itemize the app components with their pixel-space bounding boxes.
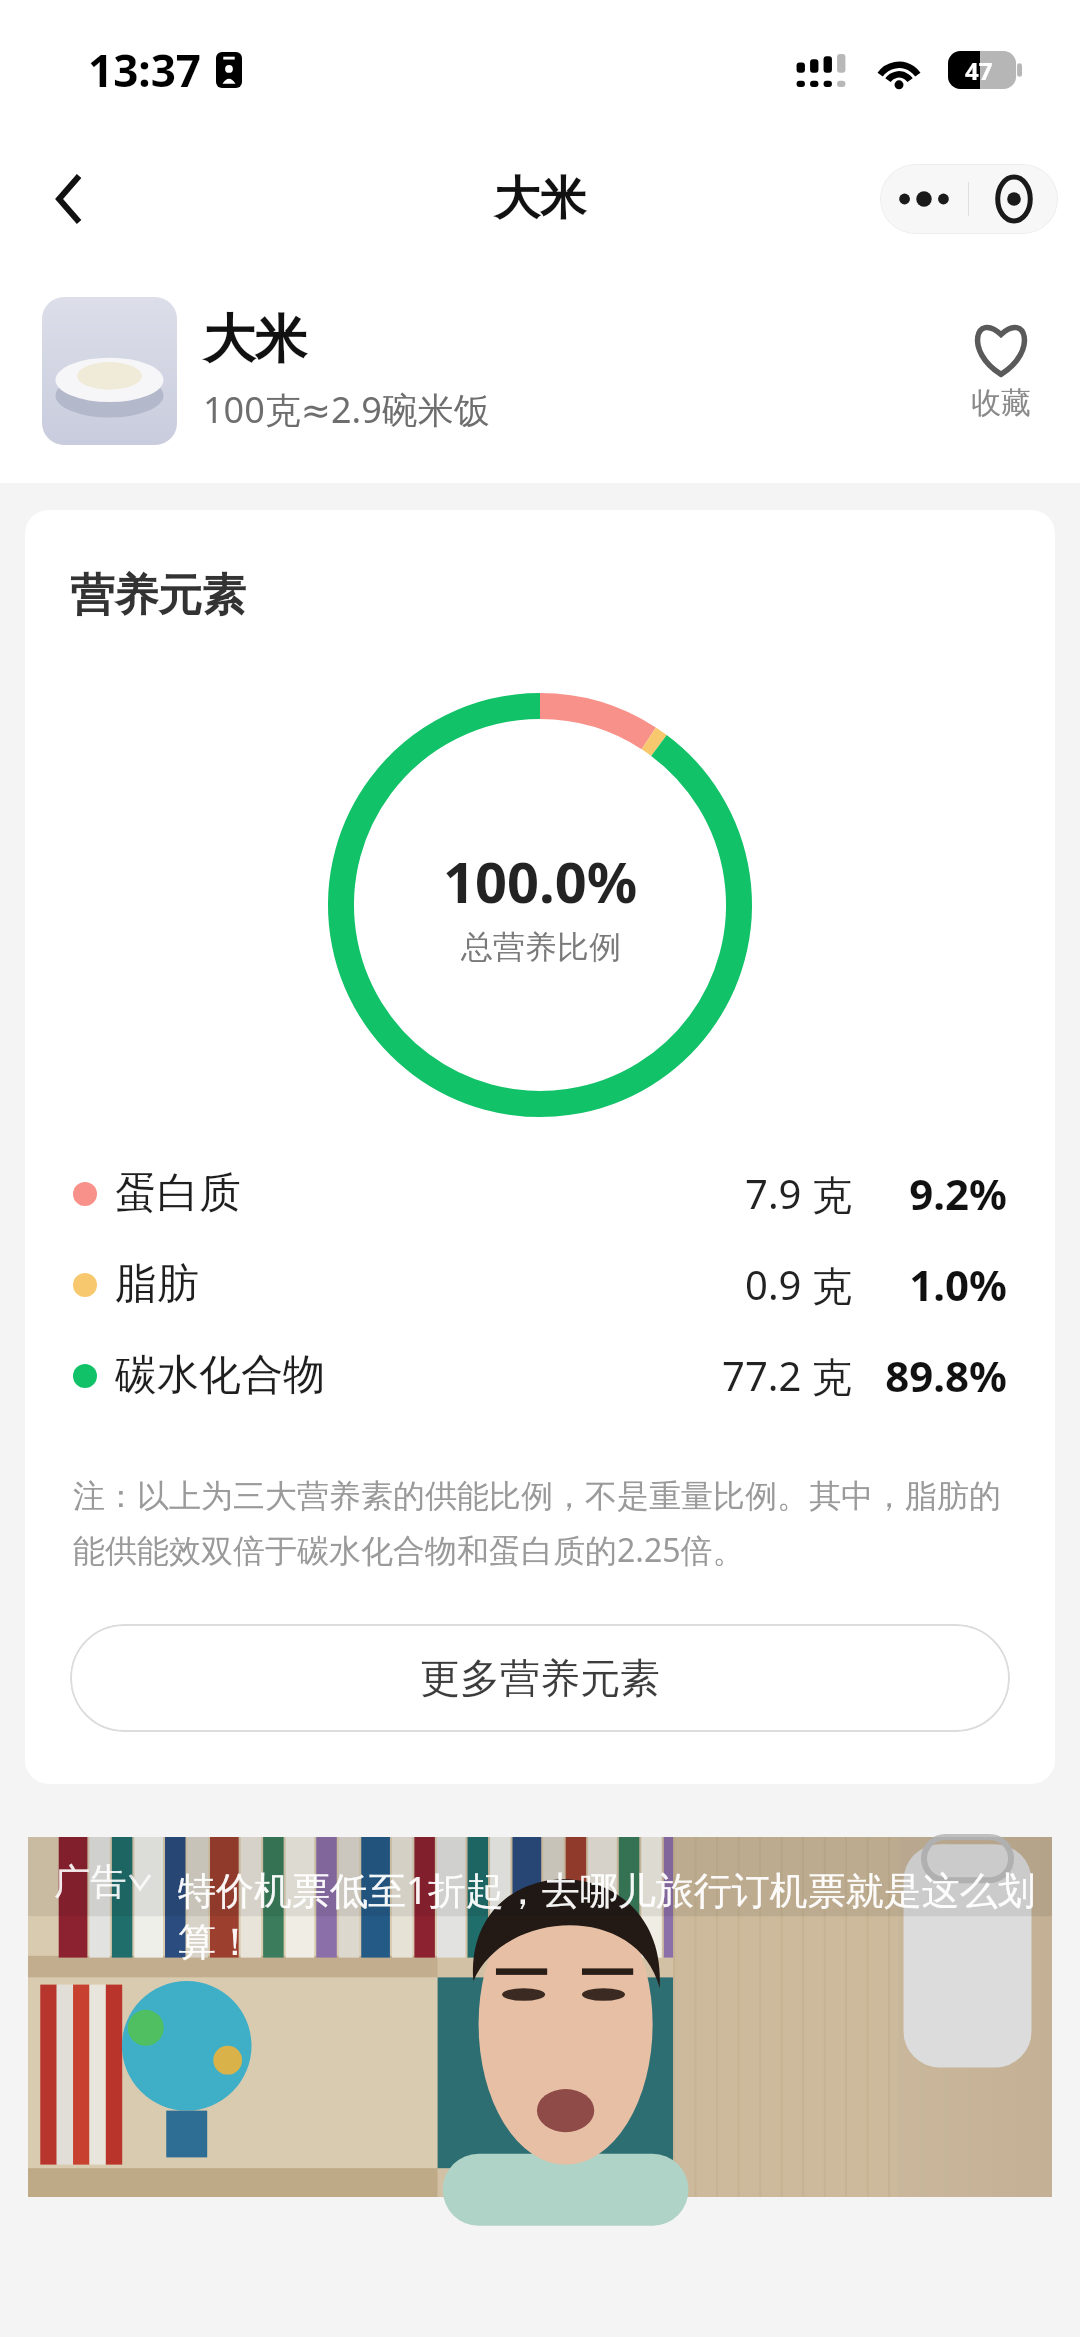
- staticText: 总营养比例: [461, 927, 621, 967]
- staticText: 77.2 克: [722, 1348, 852, 1403]
- staticText: 碳水化合物: [115, 1349, 325, 1402]
- button[interactable]: 大米图片: [42, 297, 177, 445]
- staticText: 广告: [54, 1859, 126, 1904]
- staticText: 1.0%: [909, 1256, 1007, 1313]
- staticText: 更多营养元素: [420, 1653, 660, 1703]
- staticText: 100克≈2.9碗米饭: [203, 385, 490, 434]
- staticText: 大米: [494, 170, 586, 228]
- staticText: 47: [965, 54, 993, 87]
- button[interactable]: 返回: [30, 159, 110, 239]
- button[interactable]: 关闭: [969, 164, 1058, 234]
- staticText: 89.8%: [885, 1347, 1007, 1404]
- staticText: 特价机票低至1折起，去哪儿旅行订机票就是这么划算！: [178, 1863, 1052, 1967]
- staticText: 大米: [203, 307, 307, 373]
- button[interactable]: 脂肪: [25, 1256, 1055, 1313]
- staticText: 收藏: [971, 384, 1031, 422]
- staticText: 营养元素: [70, 568, 246, 623]
- button[interactable]: 广告: [28, 1837, 1052, 2197]
- staticText: 蛋白质: [115, 1167, 241, 1220]
- button[interactable]: 收藏: [964, 320, 1038, 422]
- staticText: 注：以上为三大营养素的供能比例，不是重量比例。其中，脂肪的能供能效双倍于碳水化合…: [73, 1476, 1007, 1572]
- staticText: 13:37: [88, 40, 202, 100]
- staticText: 9.2%: [909, 1165, 1007, 1222]
- button[interactable]: 更多: [880, 164, 968, 234]
- staticText: 100.0%: [443, 843, 638, 919]
- staticText: 7.9 克: [745, 1166, 852, 1221]
- button[interactable]: 蛋白质: [25, 1165, 1055, 1222]
- staticText: 脂肪: [115, 1258, 199, 1311]
- staticText: 0.9 克: [745, 1257, 852, 1312]
- button[interactable]: 碳水化合物: [25, 1347, 1055, 1404]
- button[interactable]: 更多营养元素: [70, 1624, 1010, 1732]
